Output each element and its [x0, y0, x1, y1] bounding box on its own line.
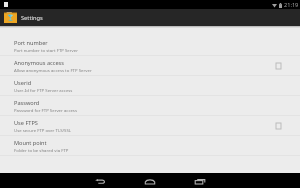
button[interactable]: Userid: [0, 76, 300, 96]
staticText: Port number: [14, 39, 48, 47]
staticText: 21:19: [284, 1, 299, 9]
button[interactable]: Back: [93, 175, 107, 187]
staticText: Settings: [21, 14, 43, 22]
staticText: Allow anonymous access to FTP Server: [14, 67, 92, 73]
button[interactable]: Password: [0, 96, 300, 116]
staticText: Password: [14, 99, 40, 107]
staticText: Port number to start FTP Server: [14, 47, 78, 53]
staticText: Mount point: [14, 139, 47, 147]
staticText: Folder to be shared via FTP: [14, 147, 69, 153]
staticText: Use FTPS: [14, 119, 38, 127]
staticText: Use secure FTP over TLS/SSL: [14, 127, 72, 133]
staticText: User-Id for FTP Server access: [14, 87, 73, 93]
button[interactable]: Anonymous access: [0, 56, 300, 76]
button[interactable]: Settings: [0, 9, 300, 26]
button[interactable]: Mount point: [0, 136, 300, 156]
staticText: Password for FTP Server access: [14, 107, 77, 113]
button[interactable]: Port number: [0, 36, 300, 56]
button[interactable]: Recent apps: [193, 175, 207, 187]
staticText: Anonymous access: [14, 59, 64, 67]
staticText: Userid: [14, 79, 32, 87]
button[interactable]: Home: [143, 175, 157, 187]
button[interactable]: Use FTPS: [0, 116, 300, 136]
